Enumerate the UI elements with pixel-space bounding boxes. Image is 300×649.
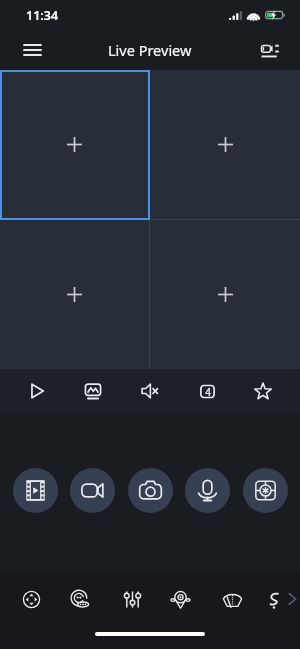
button[interactable]: Take photo (128, 468, 173, 513)
staticText: 4 (205, 385, 211, 399)
button[interactable]: Add camera (0, 70, 149, 219)
button[interactable]: Mute (130, 371, 170, 411)
button[interactable]: Record video (70, 468, 115, 513)
button[interactable]: Camera list (250, 30, 290, 70)
button[interactable]: Recordings (13, 468, 58, 513)
button[interactable]: Menu (12, 30, 52, 70)
button[interactable]: Directional control (14, 582, 48, 616)
button[interactable]: PTZ (243, 468, 288, 513)
button[interactable]: Favorite (243, 371, 283, 411)
button[interactable]: Add camera (0, 220, 149, 369)
button[interactable]: Play (17, 371, 57, 411)
button[interactable]: Add camera (150, 70, 300, 219)
button[interactable]: Split 4 (187, 371, 227, 411)
staticText: Live Preview (108, 40, 192, 60)
staticText: 11:34 (26, 7, 59, 24)
button[interactable]: Auto tracking (163, 582, 197, 616)
button[interactable]: Add camera (150, 220, 300, 369)
button[interactable]: Next (281, 588, 300, 610)
button[interactable]: More (258, 582, 292, 616)
button[interactable]: Image settings (115, 582, 149, 616)
button[interactable]: Wiper (215, 582, 249, 616)
button[interactable]: Fisheye (62, 582, 96, 616)
button[interactable]: Microphone (185, 468, 230, 513)
button[interactable]: Snapshot (73, 371, 113, 411)
